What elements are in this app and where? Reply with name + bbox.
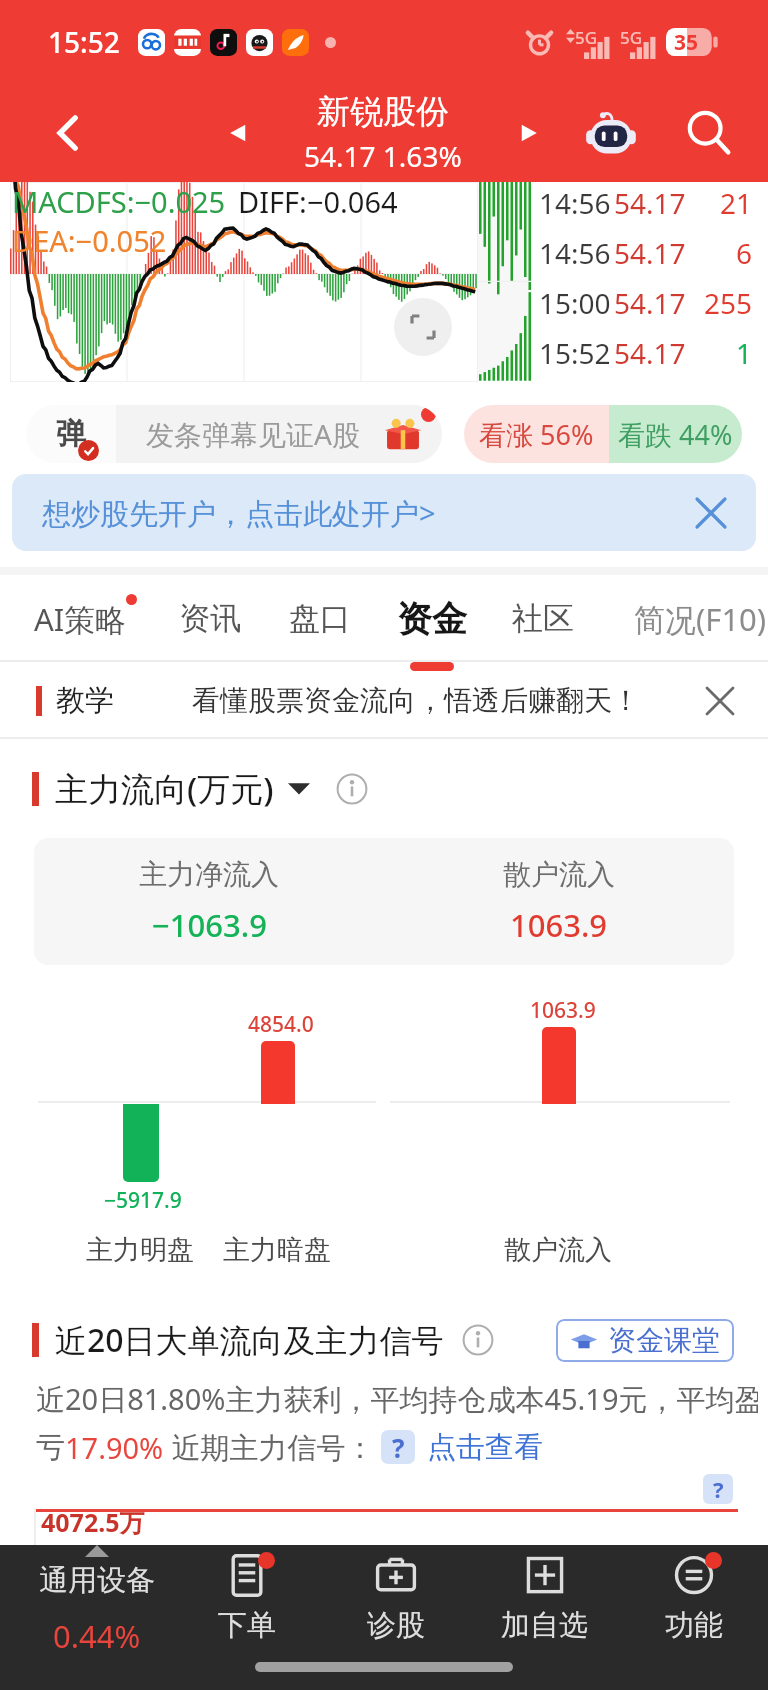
- button[interactable]: 通用设备: [22, 1545, 172, 1669]
- staticText: 下单: [218, 1607, 276, 1644]
- staticText: ?: [392, 1430, 405, 1464]
- button[interactable]: Signal help: [381, 1430, 415, 1464]
- staticText: 4854.0: [248, 1010, 314, 1039]
- staticText: 资金: [397, 597, 467, 641]
- button[interactable]: 资金: [386, 575, 478, 662]
- staticText: −5917.9: [104, 1186, 182, 1215]
- button[interactable]: 弹: [26, 405, 442, 463]
- staticText: 主力暗盘: [223, 1233, 331, 1267]
- staticText: 资讯: [179, 599, 241, 638]
- staticText: −1063.9: [152, 904, 267, 946]
- staticText: 21: [719, 184, 752, 222]
- staticText: 看跌 44%: [618, 416, 733, 453]
- staticText: 散户流入: [504, 1233, 612, 1267]
- button[interactable]: 看涨 56%: [464, 405, 742, 463]
- staticText: 15:52: [48, 23, 120, 61]
- staticText: 亏: [36, 1429, 65, 1466]
- staticText: 主力净流入: [139, 857, 279, 892]
- staticText: 1063.9: [530, 996, 596, 1025]
- button[interactable]: 诊股: [321, 1545, 470, 1669]
- staticText: 主力流向(万元): [55, 766, 274, 811]
- button[interactable]: Fullscreen: [394, 298, 452, 356]
- staticText: 功能: [665, 1607, 723, 1644]
- staticText: 通用设备: [39, 1562, 155, 1599]
- staticText: 看懂股票资金流向，悟透后赚翻天！: [192, 683, 640, 718]
- staticText: 主力明盘: [86, 1233, 194, 1267]
- staticText: 散户流入: [503, 857, 615, 892]
- button[interactable]: AI assistant: [566, 84, 656, 182]
- staticText: 近20日大单流向及主力信号: [55, 1318, 444, 1362]
- staticText: 14:56: [539, 184, 611, 222]
- button[interactable]: 社区: [497, 575, 589, 662]
- staticText: 54.17: [614, 234, 686, 272]
- button[interactable]: Next stock: [489, 84, 569, 182]
- staticText: 54.17: [614, 184, 686, 222]
- staticText: 看涨 56%: [479, 416, 594, 453]
- staticText: DEA:−0.052: [12, 221, 167, 260]
- staticText: 4072.5万: [41, 1505, 145, 1539]
- staticText: 1: [735, 334, 752, 372]
- staticText: 资金课堂: [608, 1323, 720, 1358]
- staticText: 14:56: [539, 234, 611, 272]
- staticText: 诊股: [367, 1607, 425, 1644]
- staticText: AI策略: [34, 598, 127, 640]
- staticText: 15:00: [539, 284, 611, 322]
- staticText: 想炒股先开户，点击此处开户>: [42, 493, 436, 533]
- button[interactable]: 资金课堂: [556, 1319, 734, 1362]
- staticText: 15:52: [539, 334, 611, 372]
- button[interactable]: 加自选: [470, 1545, 619, 1669]
- button[interactable]: 资讯: [164, 575, 256, 662]
- staticText: MACDFS:−0.025: [12, 182, 226, 221]
- staticText: 6: [735, 234, 752, 272]
- button[interactable]: 简况(F10): [569, 575, 768, 662]
- button[interactable]: Previous stock: [193, 84, 283, 182]
- staticText: 近期主力信号：: [164, 1427, 375, 1467]
- button[interactable]: Close tip: [696, 677, 744, 725]
- button[interactable]: 主力流向(万元): [55, 766, 310, 811]
- button[interactable]: 点击查看: [427, 1429, 543, 1466]
- button[interactable]: Help: [703, 1474, 733, 1504]
- staticText: 发条弹幕见证A股: [146, 415, 360, 453]
- staticText: 简况(F10): [634, 598, 767, 640]
- staticText: 新锐股份: [317, 91, 449, 133]
- staticText: 社区: [512, 599, 574, 638]
- button[interactable]: 盘口: [274, 575, 366, 662]
- button[interactable]: Close banner: [686, 488, 736, 538]
- staticText: 5G: [620, 26, 643, 49]
- staticText: 17.90%: [65, 1428, 164, 1467]
- staticText: 盘口: [289, 599, 351, 638]
- staticText: 近20日81.80%主力获利，平均持仓成本45.19元，平均盈: [36, 1379, 758, 1419]
- button[interactable]: 功能: [619, 1545, 768, 1669]
- staticText: DIFF:−0.064: [238, 182, 398, 221]
- staticText: 1063.9: [510, 904, 608, 946]
- staticText: 5G: [575, 26, 598, 49]
- button[interactable]: Back: [0, 84, 136, 182]
- staticText: 255: [703, 284, 752, 322]
- staticText: 54.17: [614, 334, 686, 372]
- staticText: 教学: [56, 682, 114, 719]
- staticText: ?: [713, 1474, 724, 1504]
- staticText: 加自选: [501, 1607, 588, 1644]
- button[interactable]: 想炒股先开户，点击此处开户>: [12, 474, 756, 551]
- staticText: 54.17: [614, 284, 686, 322]
- button[interactable]: 下单: [172, 1545, 321, 1669]
- staticText: 0.44%: [53, 1615, 141, 1657]
- staticText: 54.17 1.63%: [304, 137, 462, 175]
- staticText: 弹: [56, 415, 86, 453]
- staticText: 35: [674, 28, 699, 56]
- button[interactable]: AI策略: [0, 575, 160, 662]
- button[interactable]: Search: [659, 84, 759, 182]
